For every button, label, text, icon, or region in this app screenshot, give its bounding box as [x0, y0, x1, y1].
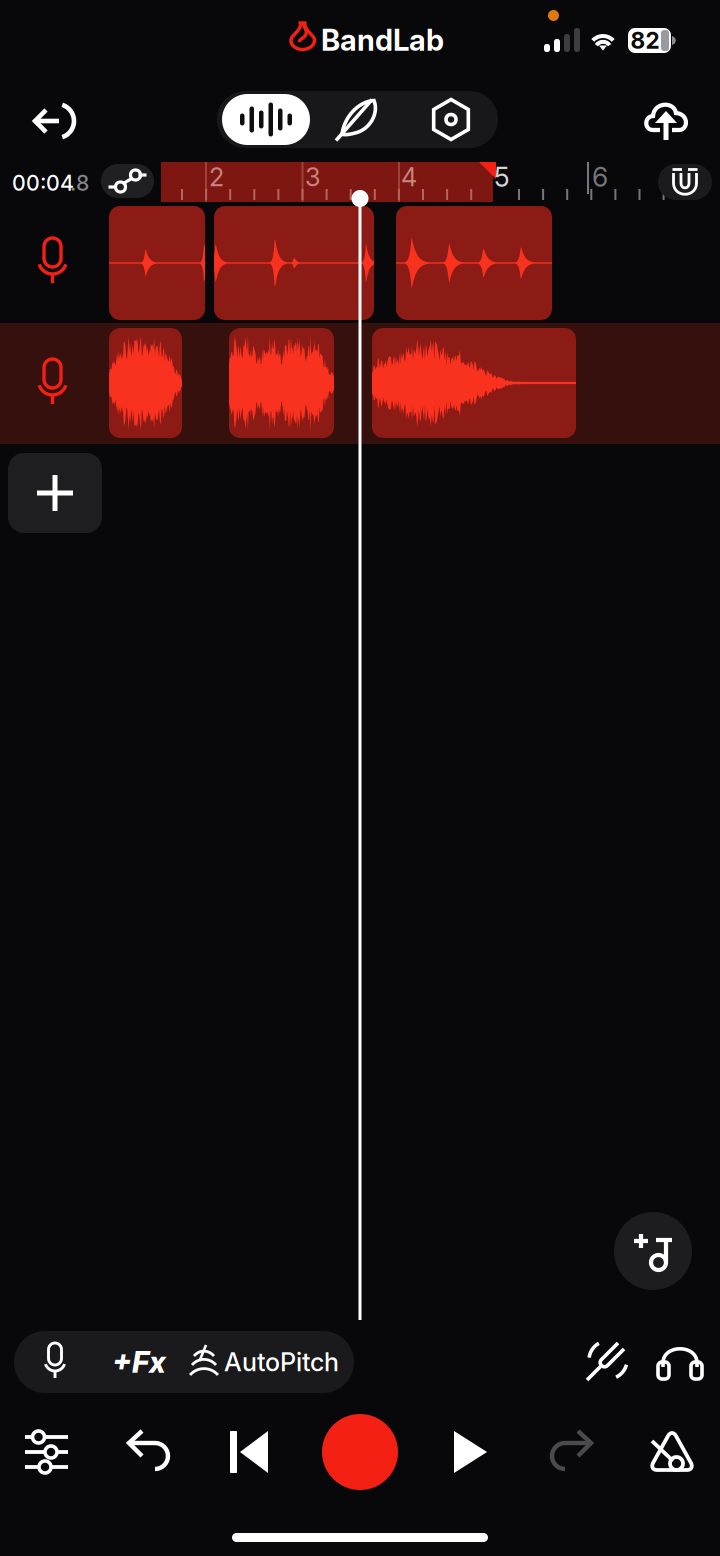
button[interactable]: Mix settings	[404, 91, 498, 148]
button[interactable]: Add track	[8, 453, 102, 533]
button[interactable]: Track 1 microphone	[0, 202, 105, 322]
button[interactable]: Monitoring	[643, 1325, 717, 1399]
staticText: .8	[70, 170, 89, 196]
staticText: AutoPitch	[224, 1347, 339, 1377]
staticText: 2	[209, 162, 224, 192]
button[interactable]: Metronome	[625, 1405, 719, 1499]
button[interactable]: Track 2 microphone	[0, 323, 105, 443]
button[interactable]: Undo	[101, 1405, 195, 1499]
button[interactable]: Tuner	[568, 1325, 642, 1399]
button[interactable]: Upload	[626, 81, 706, 161]
staticText: 82	[630, 27, 659, 54]
button[interactable]: +Fx	[14, 1331, 354, 1393]
button[interactable]: Back	[14, 81, 94, 161]
button[interactable]: Add MIDI region	[614, 1212, 692, 1290]
button[interactable]: Record	[313, 1405, 407, 1499]
button[interactable]: Snap to grid	[658, 164, 712, 200]
button[interactable]: Automation	[101, 164, 154, 198]
staticText: BandLab	[321, 22, 444, 58]
staticText: 4	[401, 162, 417, 192]
button[interactable]: Redo	[525, 1405, 619, 1499]
button[interactable]: Play	[423, 1405, 517, 1499]
staticText: 6	[592, 161, 608, 193]
staticText: 3	[305, 162, 321, 192]
staticText: 00:04	[12, 170, 74, 196]
button[interactable]: Mixer	[0, 1405, 94, 1499]
staticText: +Fx	[112, 1344, 166, 1380]
button[interactable]: Go to start	[203, 1405, 297, 1499]
button[interactable]: Tracks view	[222, 94, 310, 145]
staticText: 5	[494, 161, 510, 193]
button[interactable]: Lyrics	[310, 91, 404, 148]
